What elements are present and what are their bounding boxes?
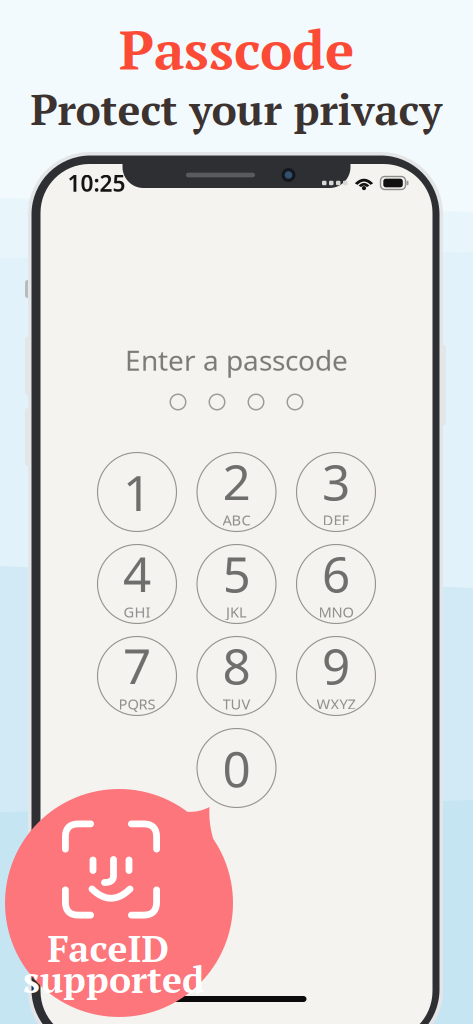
staticText: GHI xyxy=(123,602,150,621)
staticText: 7 xyxy=(123,632,151,698)
staticText: 4 xyxy=(123,540,151,606)
staticText: supported xyxy=(23,954,204,1004)
staticText: 8 xyxy=(222,632,250,698)
button[interactable]: 3 xyxy=(296,452,375,531)
staticText: Protect your privacy xyxy=(30,81,442,137)
button[interactable]: 4 xyxy=(97,544,176,623)
staticText: 9 xyxy=(322,632,350,698)
button[interactable]: 9 xyxy=(296,636,375,715)
staticText: Passcode xyxy=(119,13,354,85)
button[interactable]: 2 xyxy=(197,452,276,531)
staticText: 10:25 xyxy=(67,168,125,198)
staticText: PQRS xyxy=(118,694,155,713)
staticText: JKL xyxy=(226,602,247,621)
staticText: 5 xyxy=(222,540,250,606)
button[interactable]: 0 xyxy=(197,728,276,807)
button[interactable]: 5 xyxy=(197,544,276,623)
staticText: ABC xyxy=(222,510,250,529)
button[interactable]: 1 xyxy=(97,452,176,531)
button[interactable]: 8 xyxy=(197,636,276,715)
staticText: TUV xyxy=(222,694,250,713)
staticText: MNO xyxy=(318,602,353,621)
staticText: Enter a passcode xyxy=(125,341,348,379)
staticText: DEF xyxy=(322,510,349,529)
button[interactable]: 7 xyxy=(97,636,176,715)
staticText: WXYZ xyxy=(316,694,355,713)
staticText: 0 xyxy=(222,735,250,801)
button[interactable]: 6 xyxy=(296,544,375,623)
staticText: FaceID xyxy=(47,923,168,973)
staticText: 1 xyxy=(123,459,151,525)
staticText: 2 xyxy=(222,448,250,514)
staticText: 3 xyxy=(322,448,350,514)
staticText: 6 xyxy=(322,540,350,606)
